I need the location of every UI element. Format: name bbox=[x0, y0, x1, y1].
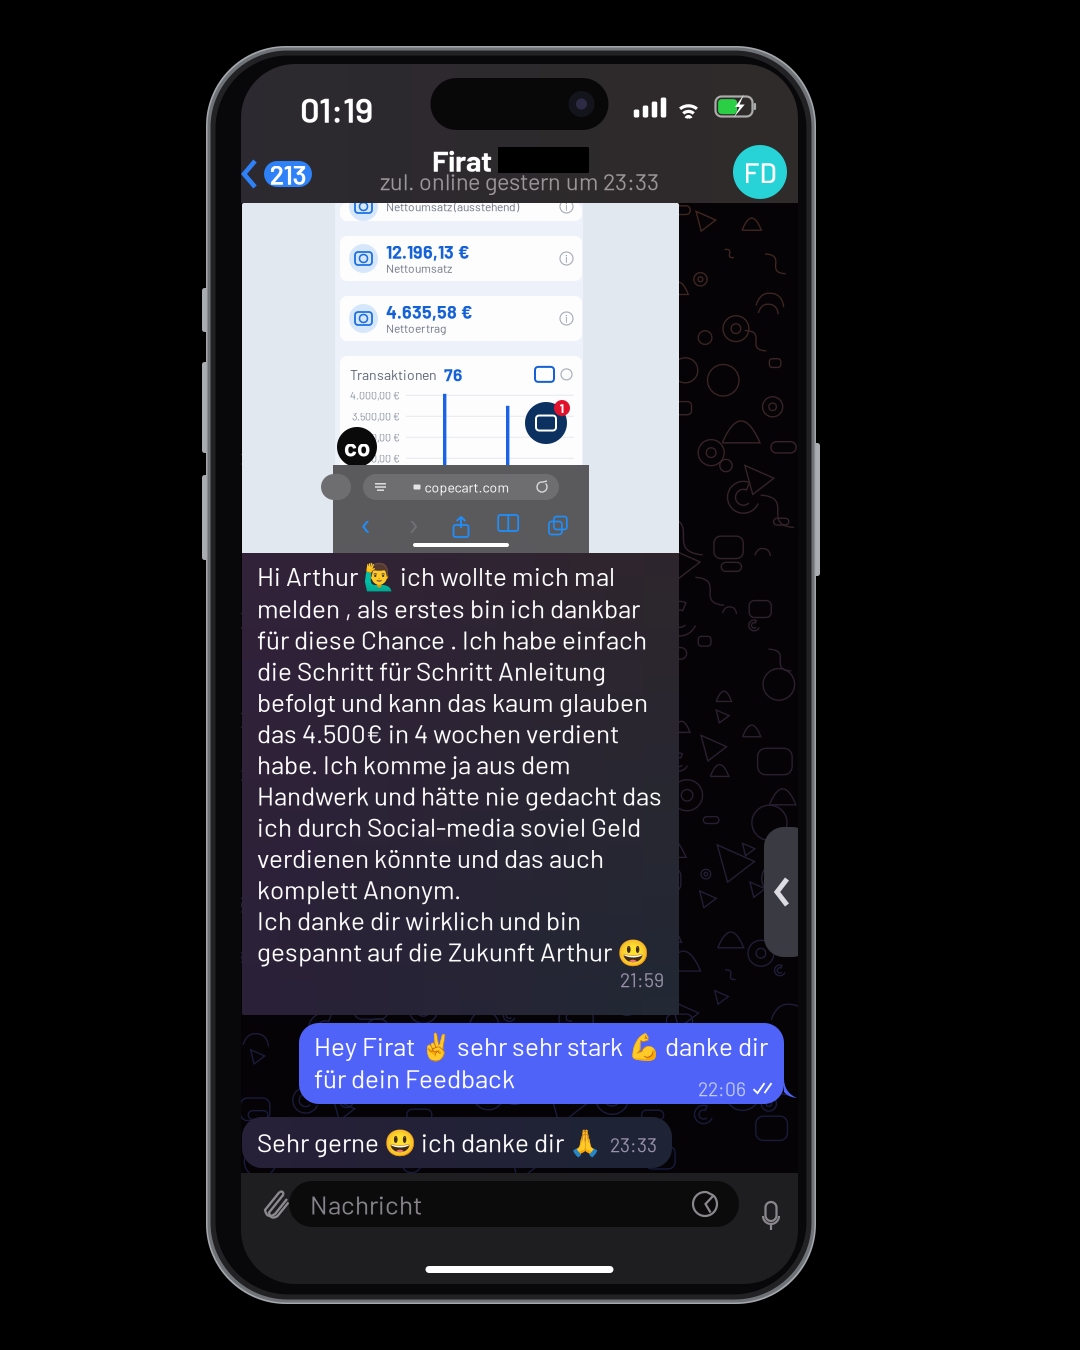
staticText: Transaktionen bbox=[350, 366, 437, 383]
staticText: copecart.com bbox=[424, 479, 509, 495]
button[interactable]: Attach file bbox=[247, 1177, 303, 1239]
staticText: Ich danke dir wirklich und bin gespannt … bbox=[257, 904, 649, 968]
staticText: 2.500,00 € bbox=[351, 452, 400, 465]
staticText: 22:06 bbox=[698, 1077, 746, 1100]
staticText: Sehr gerne 😃 ich danke dir 🙏 bbox=[257, 1126, 601, 1159]
staticText: Nettoertrag bbox=[386, 321, 446, 335]
staticText: Firat bbox=[432, 142, 492, 178]
staticText: › bbox=[407, 502, 421, 544]
staticText: Hi Arthur 🙋‍♂️ ich wollte mich mal melde… bbox=[257, 560, 662, 904]
staticText: 12.196,13 € bbox=[386, 241, 469, 262]
button[interactable]: Record voice message bbox=[750, 1188, 792, 1240]
staticText: FD bbox=[743, 155, 776, 189]
staticText: 76 bbox=[444, 364, 462, 385]
staticText: Nettoumsatz (ausstehend) bbox=[386, 199, 519, 214]
staticText: Nettoumsatz bbox=[386, 261, 452, 275]
staticText: i bbox=[565, 200, 568, 213]
staticText: i bbox=[565, 312, 568, 325]
staticText: 21:59 bbox=[620, 968, 664, 991]
staticText: Hey Firat ✌️ sehr sehr stark 💪 danke dir… bbox=[314, 1030, 768, 1093]
staticText: 3.500,00 € bbox=[352, 410, 400, 423]
staticText: 213 bbox=[269, 158, 306, 190]
staticText: ‹ bbox=[360, 502, 373, 544]
staticText: 3.000,00 € bbox=[351, 431, 400, 444]
staticText: 23:33 bbox=[610, 1133, 657, 1156]
staticText: 4.000,00 € bbox=[350, 389, 400, 402]
staticText: Nachricht bbox=[310, 1188, 422, 1220]
staticText: 4.635,58 € bbox=[386, 301, 472, 322]
staticText: 1 bbox=[559, 400, 564, 416]
button[interactable]: 213 bbox=[235, 147, 318, 201]
staticText: co bbox=[344, 433, 370, 461]
staticText: i bbox=[565, 252, 568, 265]
staticText: zul. online gestern um 23:33 bbox=[380, 167, 659, 195]
staticText: 01:19 bbox=[300, 88, 373, 130]
button[interactable]: Contact profile bbox=[727, 139, 793, 205]
